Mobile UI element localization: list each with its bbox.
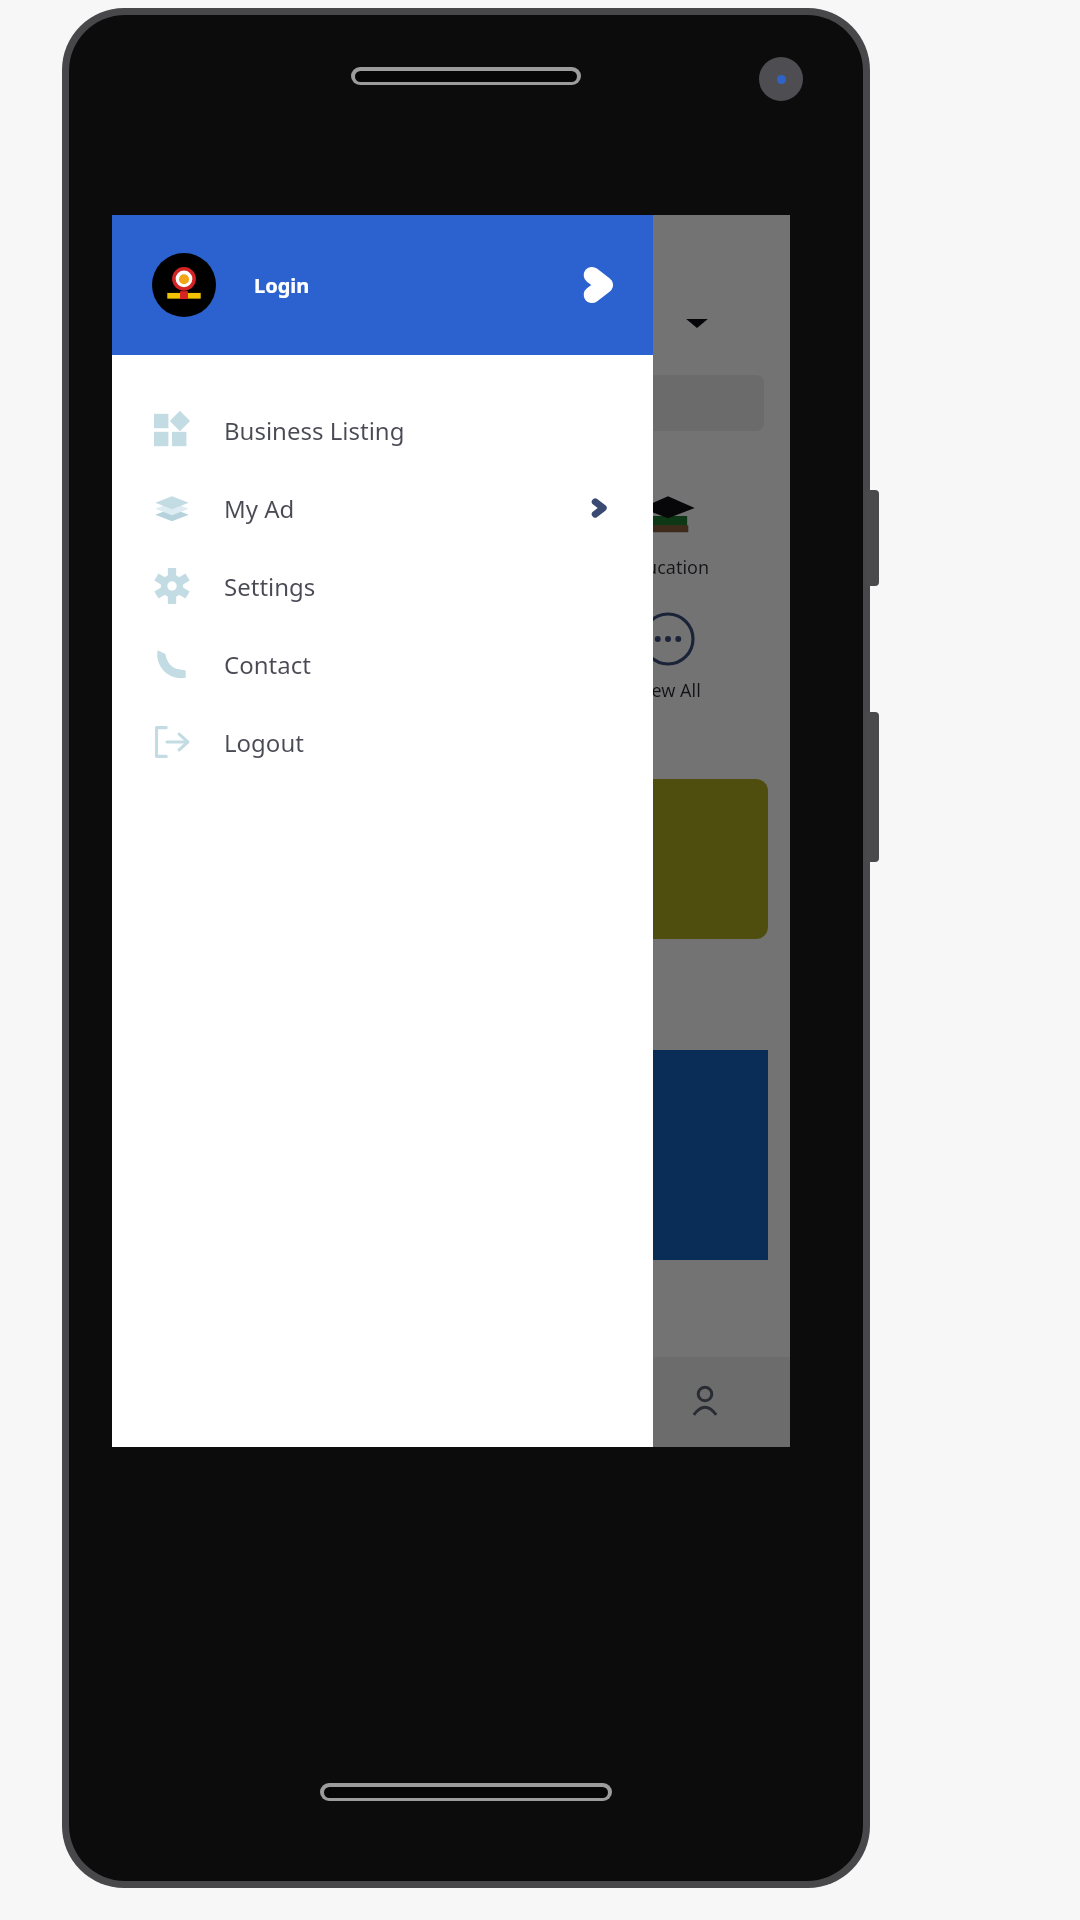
staticText: Education xyxy=(625,555,710,580)
button[interactable]: Logout xyxy=(112,703,653,781)
button[interactable]: My Ad xyxy=(112,469,653,547)
staticText: Business Listing xyxy=(224,414,405,447)
button[interactable]: Business Listing xyxy=(112,391,653,469)
staticText: Logout xyxy=(224,726,304,759)
staticText: View All xyxy=(636,678,701,703)
staticText: Education xyxy=(192,555,277,580)
staticText: Now xyxy=(138,316,191,349)
button[interactable]: Login xyxy=(112,215,653,355)
staticText: My Ad xyxy=(224,492,295,525)
button[interactable]: Settings xyxy=(112,547,653,625)
staticText: Search xyxy=(138,295,183,314)
staticText: Login xyxy=(254,272,310,299)
staticText: Contact xyxy=(224,648,311,681)
button[interactable]: Contact xyxy=(112,625,653,703)
other: Open profile xyxy=(579,266,617,304)
staticText: Settings xyxy=(224,570,316,603)
